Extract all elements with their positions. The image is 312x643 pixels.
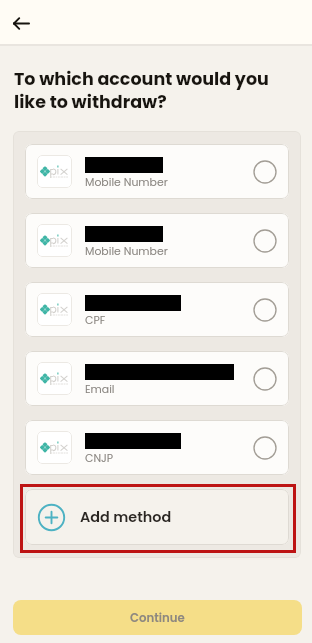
staticText: CPF: [85, 313, 106, 328]
button[interactable]: Email: [25, 351, 289, 406]
staticText: Mobile Number: [85, 244, 168, 259]
button[interactable]: Continue: [13, 600, 302, 635]
staticText: To which account would you like to withd…: [14, 67, 282, 114]
button[interactable]: Mobile Number: [25, 213, 289, 268]
staticText: Continue: [130, 610, 185, 626]
button[interactable]: Back: [5, 7, 37, 39]
staticText: Email: [85, 382, 115, 397]
staticText: Mobile Number: [85, 175, 168, 190]
button[interactable]: CPF: [25, 282, 289, 337]
staticText: CNJP: [85, 451, 114, 466]
staticText: Add method: [80, 507, 172, 527]
button[interactable]: Add method: [25, 489, 289, 545]
button[interactable]: CNJP: [25, 420, 289, 475]
button[interactable]: Mobile Number: [25, 144, 289, 199]
